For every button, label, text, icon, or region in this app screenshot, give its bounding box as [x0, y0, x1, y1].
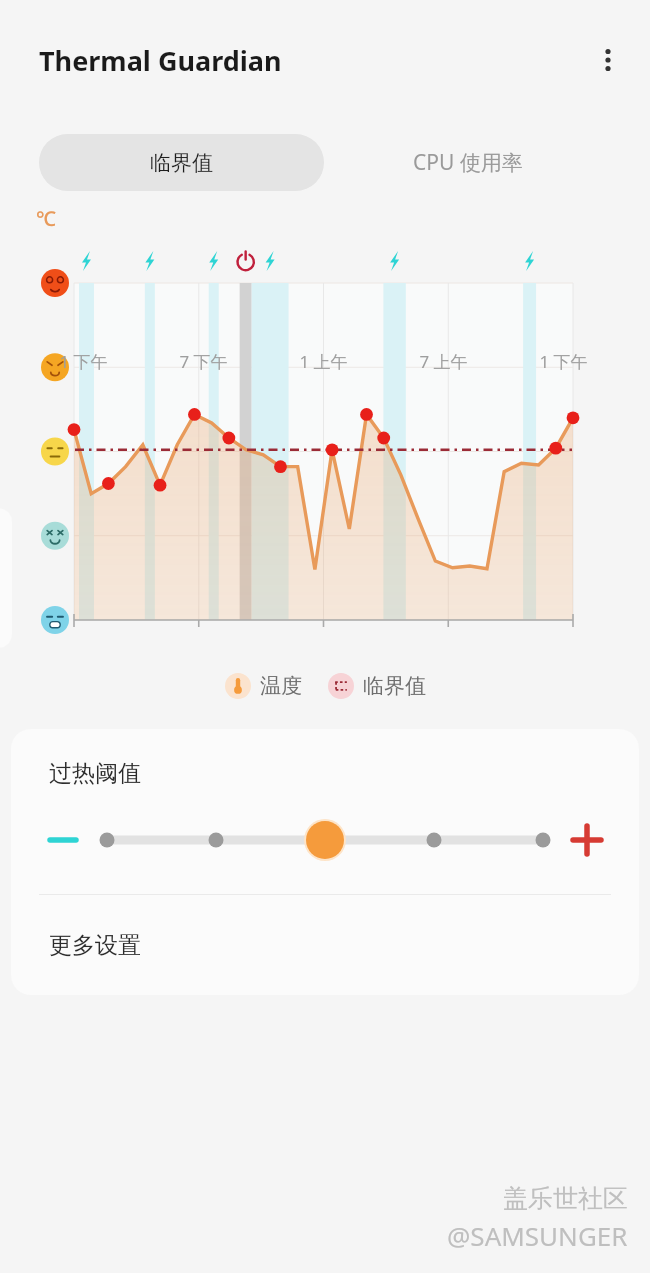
staticText: 1 下午	[539, 350, 588, 373]
staticText: 盖乐世社区	[503, 1183, 628, 1214]
button[interactable]: 更多设置	[11, 895, 639, 995]
button[interactable]: 临界值	[326, 671, 428, 701]
button[interactable]: 临界值	[39, 134, 324, 191]
staticText: 过热阈值	[49, 759, 141, 788]
staticText: @SAMSUNGER	[447, 1218, 628, 1253]
button[interactable]: More options	[580, 32, 636, 88]
staticText: 1 下午	[59, 350, 108, 373]
button[interactable]: 温度	[223, 671, 304, 701]
staticText: 1 上午	[299, 350, 348, 373]
staticText: 7 下午	[179, 350, 228, 373]
staticText: 临界值	[363, 673, 426, 699]
staticText: ℃	[36, 205, 56, 232]
staticText: CPU 使用率	[413, 148, 523, 177]
staticText: 7 上午	[419, 350, 468, 373]
staticText: 更多设置	[49, 931, 141, 960]
button[interactable]	[99, 812, 551, 868]
button[interactable]: CPU 使用率	[324, 134, 611, 191]
staticText: 温度	[260, 673, 302, 699]
button[interactable]: Increase threshold	[559, 812, 615, 868]
staticText: 临界值	[150, 150, 213, 176]
button[interactable]: Decrease threshold	[35, 812, 91, 868]
staticText: Thermal Guardian	[39, 42, 282, 79]
